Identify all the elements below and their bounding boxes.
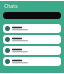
staticText: Chats: [4, 2, 18, 10]
